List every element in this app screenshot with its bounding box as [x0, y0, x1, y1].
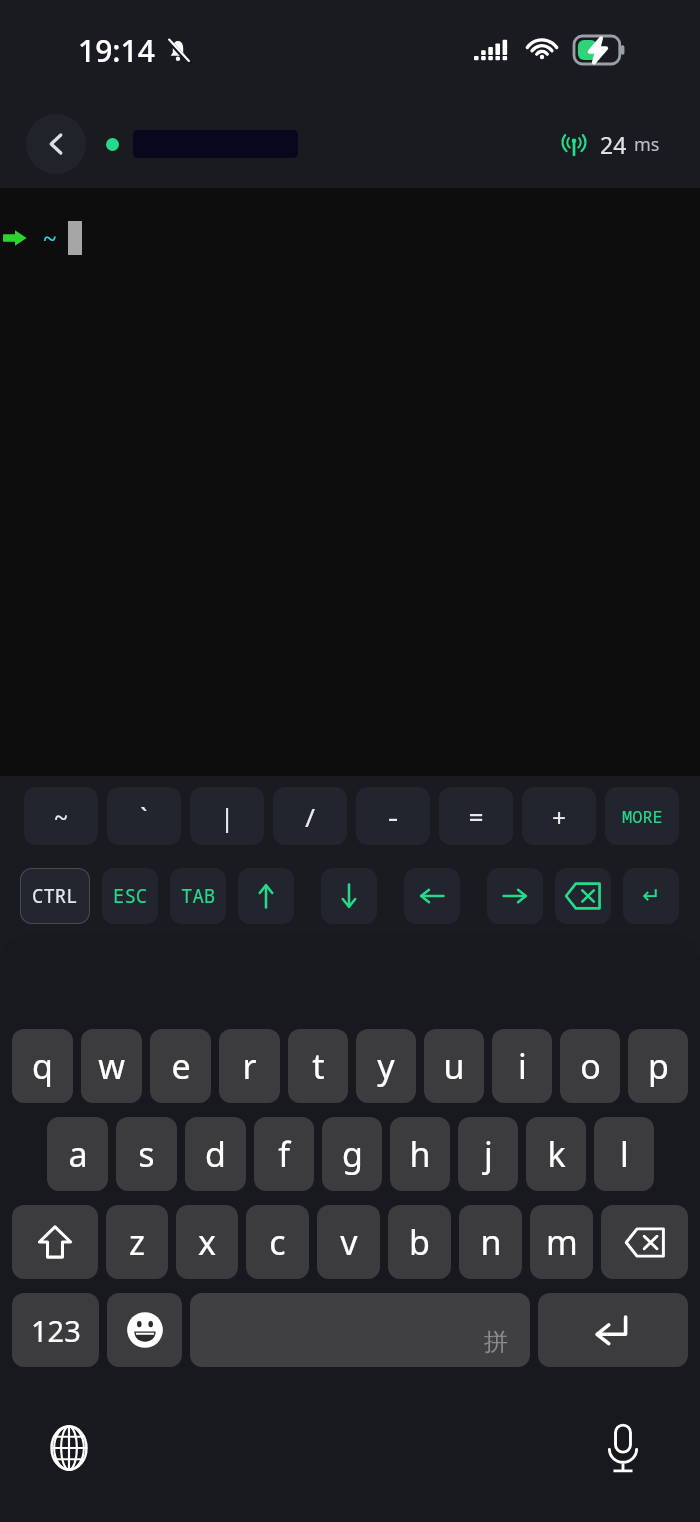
- staticText: k: [547, 1131, 566, 1177]
- staticText: MORE: [622, 805, 663, 828]
- staticText: 123: [31, 1311, 81, 1350]
- staticText: z: [129, 1219, 145, 1265]
- button[interactable]: s: [116, 1117, 177, 1191]
- staticText: ms: [634, 132, 660, 157]
- button[interactable]: o: [560, 1029, 620, 1103]
- button[interactable]: q: [12, 1029, 73, 1103]
- staticText: w: [98, 1043, 125, 1089]
- button[interactable]: p: [628, 1029, 688, 1103]
- button[interactable]: Arrow down: [321, 868, 377, 924]
- staticText: =: [468, 799, 484, 834]
- button[interactable]: v: [317, 1205, 380, 1279]
- staticText: l: [620, 1131, 629, 1177]
- staticText: CTRL: [32, 883, 78, 909]
- staticText: n: [480, 1219, 502, 1265]
- button[interactable]: f: [254, 1117, 314, 1191]
- button[interactable]: =: [439, 787, 513, 845]
- staticText: `: [136, 799, 152, 834]
- button[interactable]: Voice input: [592, 1417, 654, 1479]
- button[interactable]: u: [424, 1029, 484, 1103]
- staticText: v: [340, 1219, 358, 1265]
- staticText: TAB: [181, 883, 216, 909]
- button[interactable]: n: [459, 1205, 522, 1279]
- button[interactable]: e: [150, 1029, 211, 1103]
- button[interactable]: x: [176, 1205, 238, 1279]
- button[interactable]: t: [288, 1029, 348, 1103]
- button[interactable]: Change language: [38, 1417, 100, 1479]
- button[interactable]: c: [246, 1205, 309, 1279]
- button[interactable]: |: [190, 787, 264, 845]
- staticText: +: [551, 799, 567, 834]
- staticText: o: [580, 1043, 601, 1089]
- button[interactable]: a: [47, 1117, 108, 1191]
- button[interactable]: j: [458, 1117, 518, 1191]
- staticText: h: [409, 1131, 431, 1177]
- staticText: g: [342, 1131, 363, 1177]
- staticText: 24: [600, 129, 627, 160]
- staticText: /: [302, 799, 318, 834]
- button[interactable]: TAB: [170, 868, 226, 924]
- staticText: ESC: [113, 883, 148, 909]
- staticText: ~: [42, 220, 58, 255]
- staticText: e: [171, 1043, 191, 1089]
- button[interactable]: `: [107, 787, 181, 845]
- button[interactable]: Arrow left: [404, 868, 460, 924]
- staticText: j: [484, 1131, 493, 1177]
- staticText: s: [138, 1131, 155, 1177]
- button[interactable]: ~: [24, 787, 98, 845]
- staticText: t: [312, 1043, 325, 1089]
- button[interactable]: w: [81, 1029, 142, 1103]
- button[interactable]: g: [322, 1117, 382, 1191]
- button[interactable]: d: [185, 1117, 246, 1191]
- button[interactable]: 123: [12, 1293, 99, 1367]
- staticText: q: [32, 1043, 53, 1089]
- button[interactable]: +: [522, 787, 596, 845]
- button[interactable]: ~: [0, 188, 700, 776]
- button[interactable]: z: [106, 1205, 168, 1279]
- button[interactable]: r: [219, 1029, 280, 1103]
- staticText: ~: [53, 799, 69, 834]
- staticText: b: [409, 1219, 430, 1265]
- button[interactable]: Space: [190, 1293, 530, 1367]
- button[interactable]: i: [492, 1029, 552, 1103]
- button[interactable]: Back: [26, 114, 86, 174]
- staticText: 拼: [484, 1327, 508, 1357]
- staticText: c: [269, 1219, 286, 1265]
- staticText: y: [377, 1043, 395, 1089]
- staticText: x: [198, 1219, 216, 1265]
- staticText: f: [278, 1131, 290, 1177]
- staticText: i: [518, 1043, 527, 1089]
- staticText: |: [219, 799, 235, 834]
- button[interactable]: Arrow right: [487, 868, 543, 924]
- button[interactable]: Arrow up: [238, 868, 294, 924]
- button[interactable]: Enter: [623, 868, 679, 924]
- staticText: r: [242, 1043, 257, 1089]
- button[interactable]: y: [356, 1029, 416, 1103]
- button[interactable]: b: [388, 1205, 451, 1279]
- staticText: ↵: [642, 883, 661, 909]
- button[interactable]: MORE: [605, 787, 679, 845]
- button[interactable]: Backspace: [555, 868, 611, 924]
- staticText: a: [68, 1131, 88, 1177]
- button[interactable]: Backspace: [601, 1205, 688, 1279]
- button[interactable]: Shift: [12, 1205, 98, 1279]
- staticText: d: [205, 1131, 226, 1177]
- button[interactable]: h: [390, 1117, 450, 1191]
- button[interactable]: /: [273, 787, 347, 845]
- button[interactable]: -: [356, 787, 430, 845]
- staticText: u: [443, 1043, 465, 1089]
- button[interactable]: l: [594, 1117, 654, 1191]
- staticText: m: [546, 1219, 578, 1265]
- staticText: 19:14: [78, 30, 155, 71]
- button[interactable]: ESC: [102, 868, 158, 924]
- button[interactable]: Emoji: [107, 1293, 182, 1367]
- button[interactable]: m: [530, 1205, 593, 1279]
- button[interactable]: CTRL: [20, 868, 90, 924]
- button[interactable]: k: [526, 1117, 586, 1191]
- button[interactable]: Enter: [538, 1293, 688, 1367]
- staticText: p: [648, 1043, 669, 1089]
- staticText: -: [385, 799, 401, 834]
